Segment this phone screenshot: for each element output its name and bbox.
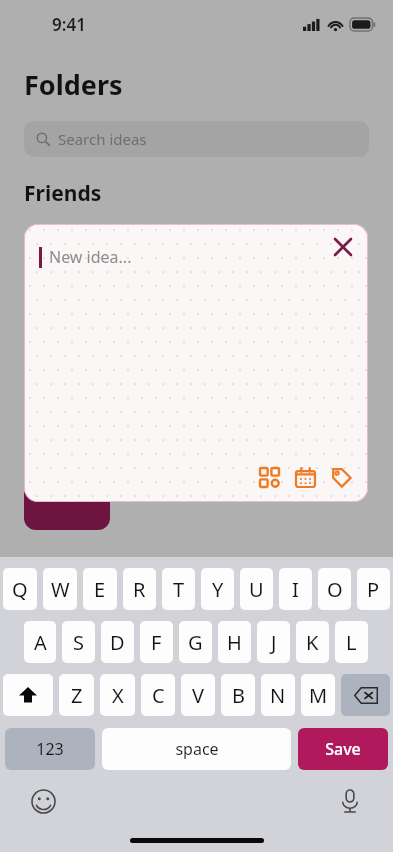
button[interactable]: U bbox=[240, 568, 273, 610]
staticText: W bbox=[51, 576, 70, 603]
button[interactable]: T bbox=[162, 568, 195, 610]
button[interactable]: Grid bbox=[254, 462, 284, 492]
button[interactable]: M bbox=[301, 674, 335, 716]
staticText: S bbox=[73, 629, 84, 656]
staticText: G bbox=[188, 629, 203, 656]
button[interactable]: Shift bbox=[3, 674, 53, 716]
button[interactable]: Emoji bbox=[26, 784, 60, 818]
button[interactable]: A bbox=[24, 621, 56, 663]
staticText: P bbox=[367, 576, 380, 603]
staticText: Q bbox=[12, 576, 28, 603]
button[interactable]: Q bbox=[3, 568, 37, 610]
button[interactable]: K bbox=[296, 621, 329, 663]
button[interactable]: I bbox=[279, 568, 312, 610]
staticText: Y bbox=[212, 576, 224, 603]
staticText: H bbox=[227, 629, 242, 656]
staticText: X bbox=[112, 682, 124, 709]
staticText: Friends bbox=[24, 179, 102, 208]
button[interactable]: Y bbox=[201, 568, 234, 610]
button[interactable]: P bbox=[357, 568, 390, 610]
staticText: U bbox=[249, 576, 264, 603]
staticText: K bbox=[306, 629, 319, 656]
staticText: N bbox=[270, 682, 286, 709]
staticText: J bbox=[271, 629, 277, 656]
staticText: Folders bbox=[24, 66, 123, 103]
staticText: V bbox=[192, 682, 204, 709]
button[interactable]: C bbox=[141, 674, 175, 716]
button[interactable]: R bbox=[123, 568, 156, 610]
button[interactable]: L bbox=[335, 621, 368, 663]
staticText: A bbox=[34, 629, 47, 656]
button[interactable]: H bbox=[218, 621, 251, 663]
button[interactable]: V bbox=[181, 674, 215, 716]
staticText: R bbox=[133, 576, 146, 603]
staticText: D bbox=[110, 629, 125, 656]
staticText: Search ideas bbox=[58, 129, 147, 149]
staticText: L bbox=[346, 629, 357, 656]
button[interactable]: 123 bbox=[5, 728, 95, 770]
staticText: F bbox=[151, 629, 162, 656]
button[interactable]: O bbox=[318, 568, 351, 610]
button[interactable]: S bbox=[62, 621, 95, 663]
button[interactable]: J bbox=[257, 621, 290, 663]
staticText: space bbox=[175, 738, 219, 760]
button[interactable]: N bbox=[261, 674, 295, 716]
button[interactable]: F bbox=[140, 621, 173, 663]
button[interactable]: Backspace bbox=[341, 674, 390, 716]
button[interactable]: Dictation bbox=[333, 784, 367, 818]
button[interactable] bbox=[24, 470, 110, 530]
staticText: I bbox=[292, 576, 299, 603]
button[interactable]: Close bbox=[326, 230, 360, 264]
staticText: 9:41 bbox=[52, 13, 86, 36]
staticText: O bbox=[327, 576, 343, 603]
staticText: C bbox=[152, 682, 165, 709]
button[interactable]: X bbox=[100, 674, 135, 716]
button[interactable]: Calendar bbox=[290, 462, 320, 492]
button[interactable]: B bbox=[221, 674, 255, 716]
button[interactable]: E bbox=[83, 568, 117, 610]
staticText: M bbox=[309, 682, 328, 709]
staticText: New idea... bbox=[49, 246, 132, 268]
staticText: Z bbox=[71, 682, 83, 709]
staticText: E bbox=[94, 576, 106, 603]
button[interactable]: space bbox=[102, 728, 291, 770]
staticText: B bbox=[232, 682, 245, 709]
button[interactable]: Save bbox=[298, 728, 388, 770]
button[interactable]: Search ideas bbox=[24, 121, 369, 157]
button[interactable]: Tag bbox=[326, 462, 356, 492]
button[interactable]: W bbox=[43, 568, 77, 610]
button[interactable]: D bbox=[101, 621, 134, 663]
staticText: Save bbox=[325, 738, 361, 760]
staticText: T bbox=[173, 576, 185, 603]
staticText: 123 bbox=[36, 738, 64, 760]
button[interactable]: Z bbox=[59, 674, 94, 716]
button[interactable]: G bbox=[179, 621, 212, 663]
